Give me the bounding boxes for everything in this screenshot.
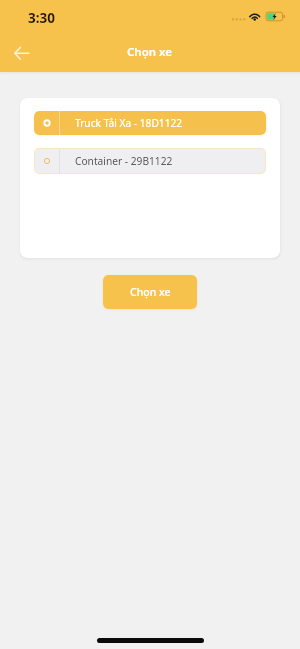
staticText: Chọn xe bbox=[130, 285, 171, 299]
staticText: Chọn xe bbox=[127, 44, 173, 60]
button[interactable]: Container - 29B1122 bbox=[34, 148, 266, 174]
button[interactable]: Chọn xe bbox=[103, 275, 197, 309]
staticText: Container - 29B1122 bbox=[75, 154, 173, 168]
staticText: 3:30 bbox=[28, 9, 55, 27]
staticText: Truck Tải Xa - 18D1122 bbox=[75, 116, 183, 130]
button[interactable]: Truck Tải Xa - 18D1122 bbox=[34, 111, 266, 135]
button[interactable]: Back bbox=[4, 35, 40, 71]
